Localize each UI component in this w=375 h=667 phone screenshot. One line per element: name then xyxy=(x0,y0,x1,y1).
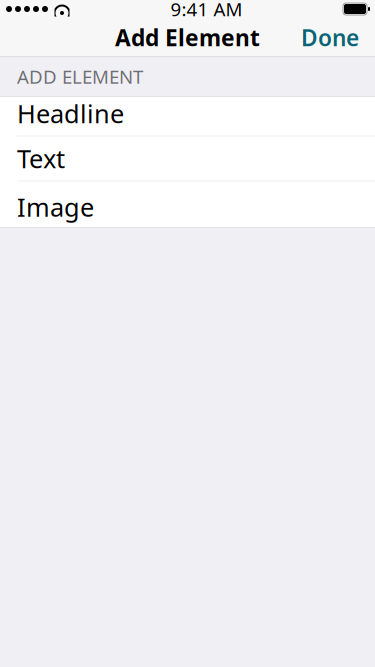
staticText: Headline xyxy=(17,97,124,130)
button[interactable]: Headline xyxy=(0,96,375,141)
staticText: Image xyxy=(17,190,94,224)
button[interactable]: Text xyxy=(0,141,375,186)
staticText: Add Element xyxy=(115,22,260,52)
button[interactable]: Done xyxy=(289,14,371,60)
button[interactable]: Image xyxy=(0,186,375,228)
staticText: ADD ELEMENT xyxy=(17,64,143,89)
staticText: Done xyxy=(301,22,359,52)
staticText: Text xyxy=(17,142,65,175)
staticText: 9:41 AM xyxy=(170,0,242,21)
